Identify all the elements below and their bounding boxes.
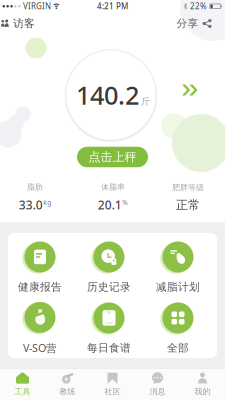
button[interactable]: 社区 (90, 369, 135, 400)
staticText: 33.0 (19, 197, 43, 213)
button[interactable]: 更多 (179, 82, 201, 98)
staticText: 访客 (13, 17, 35, 30)
staticText: 22% (190, 1, 207, 11)
button[interactable]: 分享 (176, 16, 211, 30)
staticText: 脂肪 (27, 182, 43, 192)
staticText: 肥胖等级 (172, 183, 204, 192)
staticText: V-SO营 (23, 341, 57, 355)
staticText: % (122, 198, 128, 207)
staticText: 斤 (141, 96, 150, 107)
staticText: 工具 (14, 387, 30, 396)
button[interactable]: 减脂计划 (145, 239, 211, 295)
button[interactable]: 全部 (145, 300, 211, 356)
staticText: kg (43, 198, 51, 207)
button[interactable]: 我的 (180, 369, 225, 400)
button[interactable]: 教练 (45, 369, 90, 400)
staticText: VIRGIN (23, 1, 51, 11)
button[interactable]: 健康报告 (7, 239, 73, 295)
staticText: 社区 (104, 387, 120, 396)
staticText: 历史记录 (87, 280, 131, 293)
staticText: 全部 (167, 341, 189, 354)
button[interactable]: 工具 (0, 369, 45, 400)
button[interactable]: V-SO营 (7, 300, 73, 356)
staticText: 点击上秤 (88, 150, 136, 164)
staticText: 4:21 PM (97, 1, 128, 11)
button[interactable]: 点击上秤 (77, 147, 148, 167)
staticText: 消息 (149, 387, 165, 396)
button[interactable]: 消息 (135, 369, 180, 400)
staticText: 体脂率 (101, 182, 125, 192)
staticText: 分享 (176, 17, 198, 30)
staticText: 减脂计划 (156, 280, 200, 293)
button[interactable]: 历史记录 (76, 239, 142, 295)
staticText: 正常 (176, 197, 200, 212)
staticText: 我的 (194, 387, 210, 396)
button[interactable]: 每日食谱 (76, 300, 142, 356)
staticText: 140.2 (76, 78, 139, 112)
button[interactable]: 访客 (1, 16, 35, 30)
staticText: 健康报告 (18, 280, 62, 293)
staticText: 教练 (59, 387, 75, 396)
staticText: 每日食谱 (87, 341, 131, 354)
staticText: 20.1 (98, 197, 122, 213)
